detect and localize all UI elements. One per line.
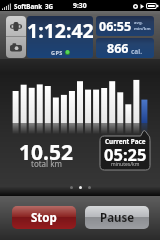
staticText: 9:30 [73,1,87,10]
staticText: avg. [134,20,143,26]
button[interactable]: Pause [85,206,149,229]
staticText: GPS [51,49,63,56]
staticText: total km [31,158,62,168]
staticText: SoftBank [14,2,43,10]
button[interactable]: Camera [6,37,26,58]
staticText: cal. [131,47,143,56]
staticText: min/km [134,26,151,32]
staticText: minutes/km [111,161,140,167]
staticText: 06:55 [99,18,132,35]
staticText: 3G [45,2,54,10]
staticText: Pause [100,210,135,226]
staticText: Current Pace [105,137,146,143]
button[interactable]: Stop [12,206,76,229]
button[interactable]: 1:12:42 [27,16,93,58]
button[interactable]: 06:55 [96,16,154,36]
staticText: 10.52 [19,138,73,158]
button[interactable]: Map [6,16,26,36]
staticText: Stop [31,210,57,226]
button[interactable]: 866 [96,38,154,58]
staticText: 866 [107,40,129,57]
staticText: 1:12:42 [27,17,93,44]
staticText: 05:25 [104,143,147,157]
